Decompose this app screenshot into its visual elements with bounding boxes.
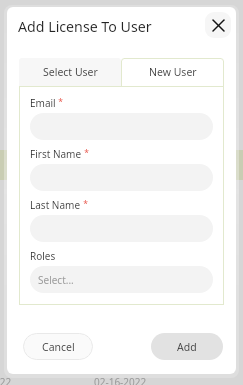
staticText: Add License To User (18, 17, 152, 36)
staticText: Select... (38, 273, 74, 287)
staticText: New User (149, 65, 197, 79)
staticText: 02-16-2022 (94, 375, 147, 385)
button[interactable]: New User (121, 58, 224, 86)
staticText: * (82, 147, 89, 159)
staticText: 022 (0, 375, 12, 385)
staticText: Roles (30, 249, 56, 263)
staticText: First Name (30, 147, 82, 161)
button[interactable]: Cancel (23, 333, 93, 360)
button[interactable]: Select... (30, 266, 213, 293)
staticText: Add (177, 340, 197, 354)
button[interactable]: Close (205, 12, 231, 38)
button[interactable]: Select User (19, 58, 121, 86)
staticText: * (81, 198, 88, 210)
staticText: Select User (43, 65, 98, 79)
staticText: Email (30, 96, 56, 110)
staticText: * (56, 96, 63, 108)
staticText: Cancel (42, 340, 75, 354)
staticText: Last Name (30, 198, 81, 212)
button[interactable]: Add (151, 333, 223, 360)
